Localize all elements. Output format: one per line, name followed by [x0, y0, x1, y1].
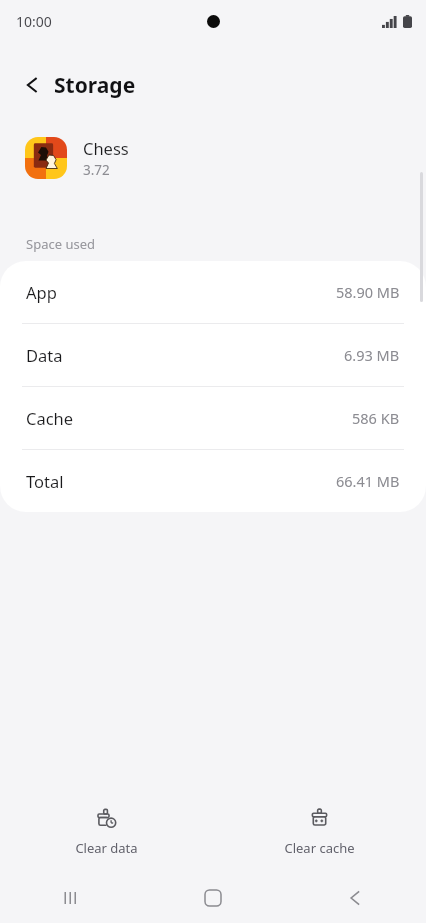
staticText: Cache	[26, 407, 74, 429]
button[interactable]: Total	[0, 450, 426, 512]
staticText: 6.93 MB	[344, 345, 400, 365]
button[interactable]: App	[0, 261, 426, 323]
button[interactable]: Clear data	[0, 802, 213, 862]
button[interactable]: Back	[18, 71, 46, 99]
button[interactable]: Home	[142, 873, 284, 923]
staticText: 586 KB	[352, 408, 400, 428]
staticText: Total	[26, 470, 64, 492]
staticText: Clear cache	[284, 839, 355, 857]
button[interactable]: Clear cache	[213, 802, 426, 862]
staticText: Clear data	[75, 839, 138, 857]
staticText: Space used	[26, 235, 95, 253]
staticText: Chess	[83, 137, 129, 159]
staticText: Data	[26, 344, 63, 366]
staticText: 66.41 MB	[336, 471, 400, 491]
staticText: 3.72	[83, 161, 110, 179]
button[interactable]: Data	[0, 324, 426, 386]
button[interactable]: Recents	[0, 873, 142, 923]
button[interactable]: Cache	[0, 387, 426, 449]
staticText: Storage	[54, 71, 136, 100]
staticText: App	[26, 281, 57, 303]
button[interactable]: Back	[284, 873, 426, 923]
staticText: 58.90 MB	[336, 282, 400, 302]
staticText: 10:00	[16, 12, 52, 31]
